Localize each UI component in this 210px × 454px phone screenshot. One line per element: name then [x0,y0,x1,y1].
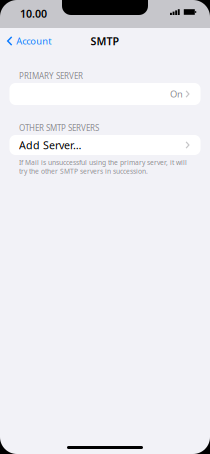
staticText: On [170,88,183,100]
staticText: Account [16,35,51,47]
button[interactable]: Add Server… [9,135,200,155]
staticText: SMTP [90,34,119,48]
staticText: PRIMARY SERVER [19,70,83,81]
staticText: OTHER SMTP SERVERS [19,122,99,133]
staticText: 10.00 [20,6,47,21]
button[interactable]: Account [0,31,51,51]
button[interactable]: On [9,83,200,105]
staticText: Add Server… [19,138,81,152]
staticText: If Mail is unsuccessful using the primar… [19,158,187,176]
